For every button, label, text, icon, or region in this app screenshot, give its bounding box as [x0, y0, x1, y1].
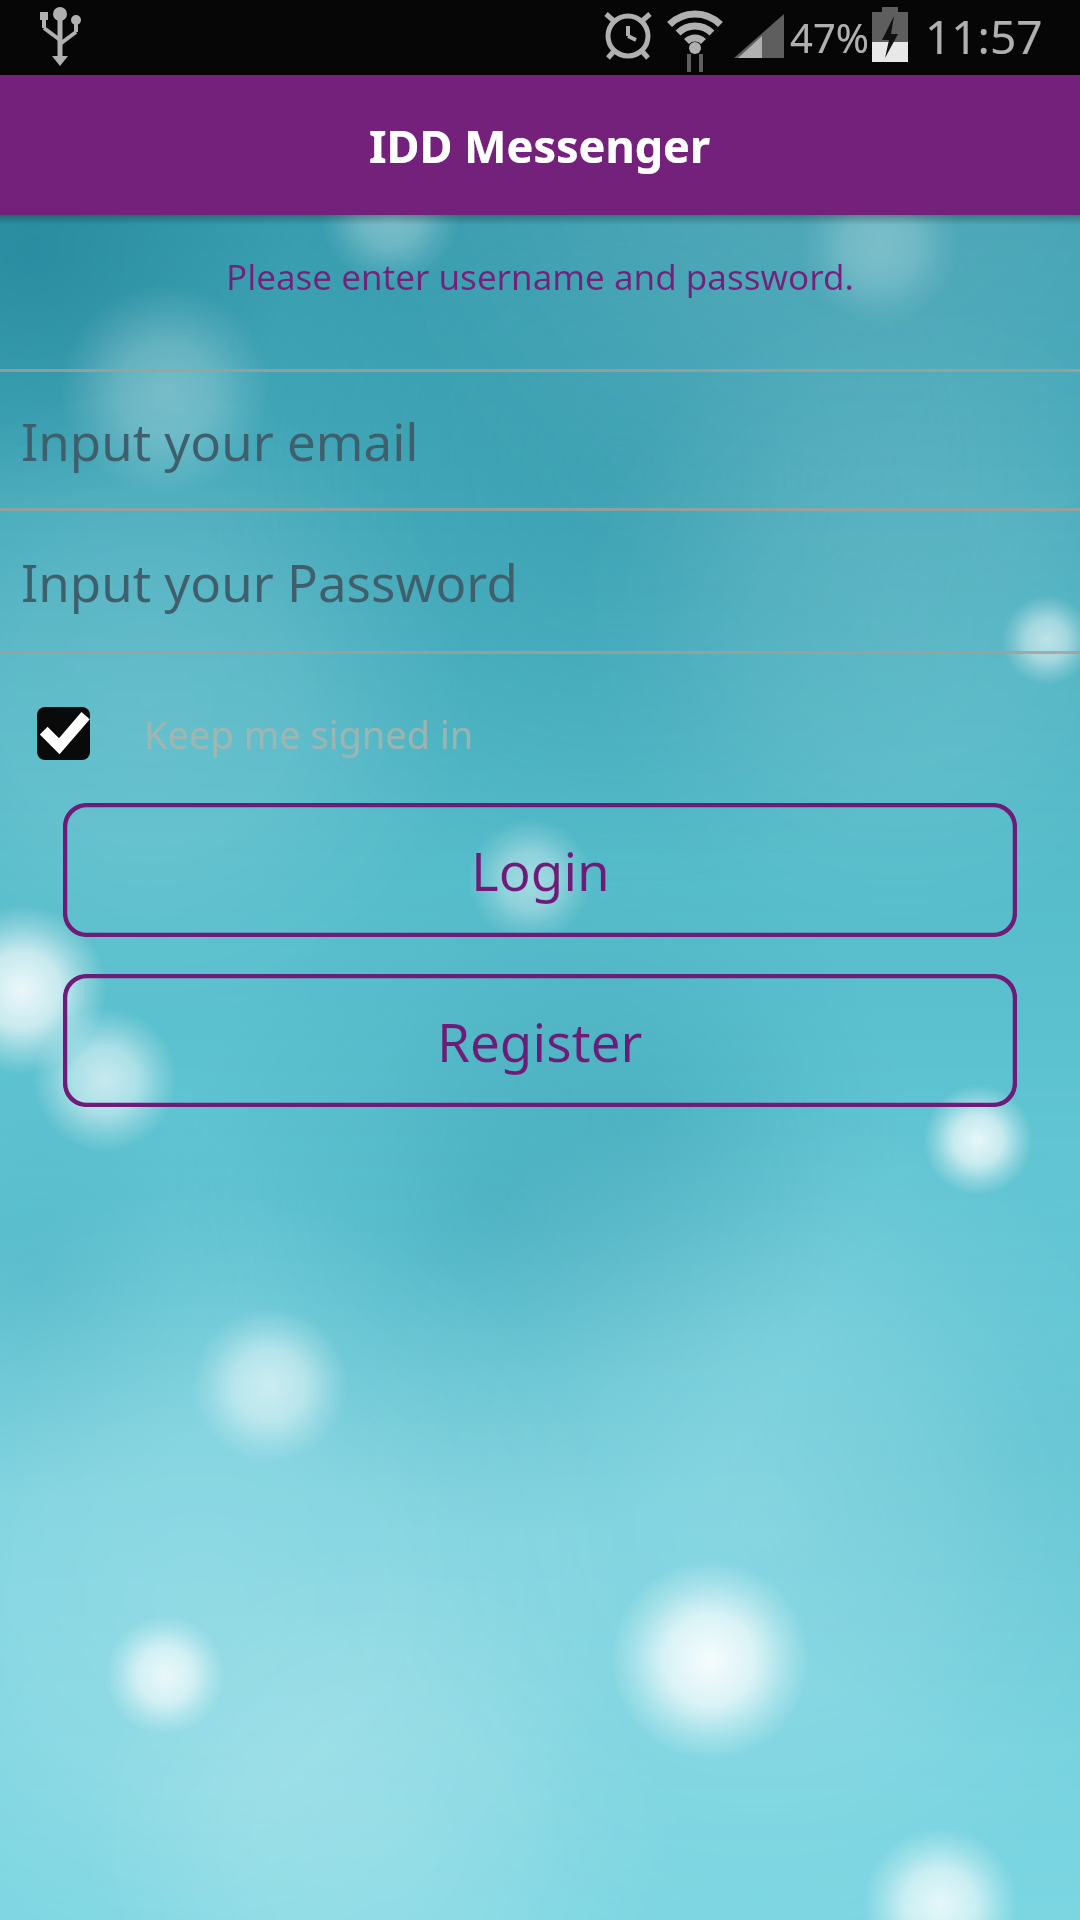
button[interactable]: Input your email [0, 372, 1080, 508]
staticText: Input your Password [21, 547, 518, 616]
staticText: 11:57 [925, 5, 1043, 68]
staticText: Login [471, 834, 610, 906]
button[interactable]: Login [63, 803, 1017, 937]
staticText: Input your email [21, 406, 419, 475]
button[interactable]: Input your Password [0, 511, 1080, 651]
staticText: 47% [790, 10, 869, 64]
staticText: Please enter username and password. [226, 253, 854, 301]
staticText: Keep me signed in [144, 708, 474, 760]
staticText: Register [437, 1005, 643, 1077]
staticText: IDD Messenger [369, 115, 711, 176]
button[interactable]: Keep me signed in [37, 707, 474, 760]
button[interactable]: Register [63, 974, 1017, 1107]
